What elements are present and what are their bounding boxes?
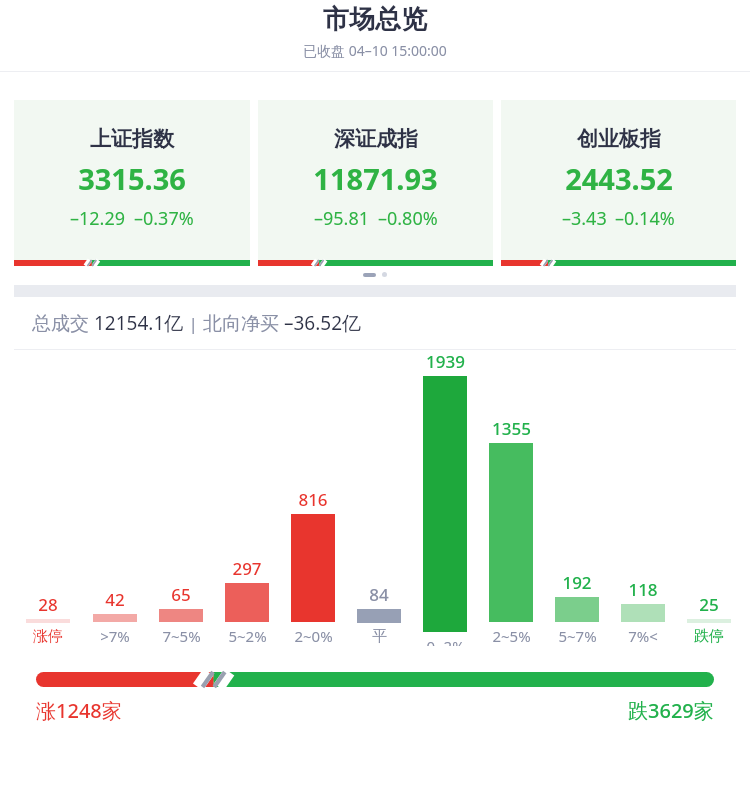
button[interactable]: 1939 [412, 350, 478, 646]
staticText: 118 [628, 578, 658, 601]
staticText: 7~5% [162, 626, 201, 646]
button[interactable]: 深证成指 [258, 100, 493, 266]
staticText: –95.81 [314, 206, 370, 231]
button[interactable]: 118 [610, 578, 676, 646]
button[interactable]: 上证指数 [14, 100, 250, 266]
staticText: 816 [298, 488, 328, 511]
staticText: 0~2% [426, 636, 465, 646]
staticText: 5~2% [228, 626, 267, 646]
staticText: –3.43 [562, 206, 607, 231]
staticText: 192 [562, 571, 592, 594]
staticText: | [184, 312, 203, 335]
button[interactable]: 25 [676, 593, 742, 646]
staticText: 创业板指 [577, 126, 661, 152]
staticText: 12154.1亿 [94, 310, 184, 336]
staticText: 已收盘 04–10 15:00:00 [303, 41, 447, 60]
staticText: 25 [699, 593, 719, 616]
staticText: –0.37% [134, 206, 194, 231]
staticText: 84 [369, 583, 389, 606]
staticText: 5~7% [558, 626, 597, 646]
staticText: >7% [100, 626, 130, 646]
button[interactable]: 816 [280, 488, 346, 646]
staticText: 跌3629家 [628, 697, 714, 724]
button[interactable]: 1355 [478, 417, 544, 646]
staticText: 2~0% [294, 626, 333, 646]
staticText: 深证成指 [334, 126, 418, 152]
staticText: 1355 [492, 417, 531, 440]
staticText: 平 [372, 627, 387, 646]
staticText: –36.52亿 [284, 310, 362, 336]
staticText: –0.14% [615, 206, 675, 231]
button[interactable]: 297 [214, 557, 280, 646]
button[interactable]: 创业板指 [501, 100, 736, 266]
staticText: 涨停 [33, 627, 63, 646]
button[interactable] [36, 672, 714, 687]
staticText: 北向净买 [203, 310, 284, 336]
staticText: 65 [171, 583, 191, 606]
staticText: 11871.93 [313, 159, 438, 198]
button[interactable]: 192 [544, 571, 610, 646]
staticText: 297 [232, 557, 262, 580]
button[interactable]: 65 [148, 583, 214, 646]
staticText: 7%< [628, 626, 658, 646]
button[interactable]: 28 [14, 593, 81, 646]
button[interactable]: 42 [81, 588, 148, 646]
staticText: 市场总览 [323, 3, 427, 36]
staticText: 跌停 [694, 627, 724, 646]
staticText: 2~5% [492, 626, 531, 646]
staticText: 28 [38, 593, 58, 616]
staticText: 42 [105, 588, 125, 611]
button[interactable]: 84 [346, 583, 412, 646]
staticText: 3315.36 [78, 159, 186, 198]
staticText: 上证指数 [90, 126, 174, 152]
staticText: 1939 [426, 350, 465, 373]
staticText: –0.80% [378, 206, 438, 231]
staticText: 总成交 [32, 310, 94, 336]
staticText: –12.29 [70, 206, 126, 231]
staticText: 涨1248家 [36, 697, 122, 724]
staticText: 2443.52 [565, 159, 673, 198]
